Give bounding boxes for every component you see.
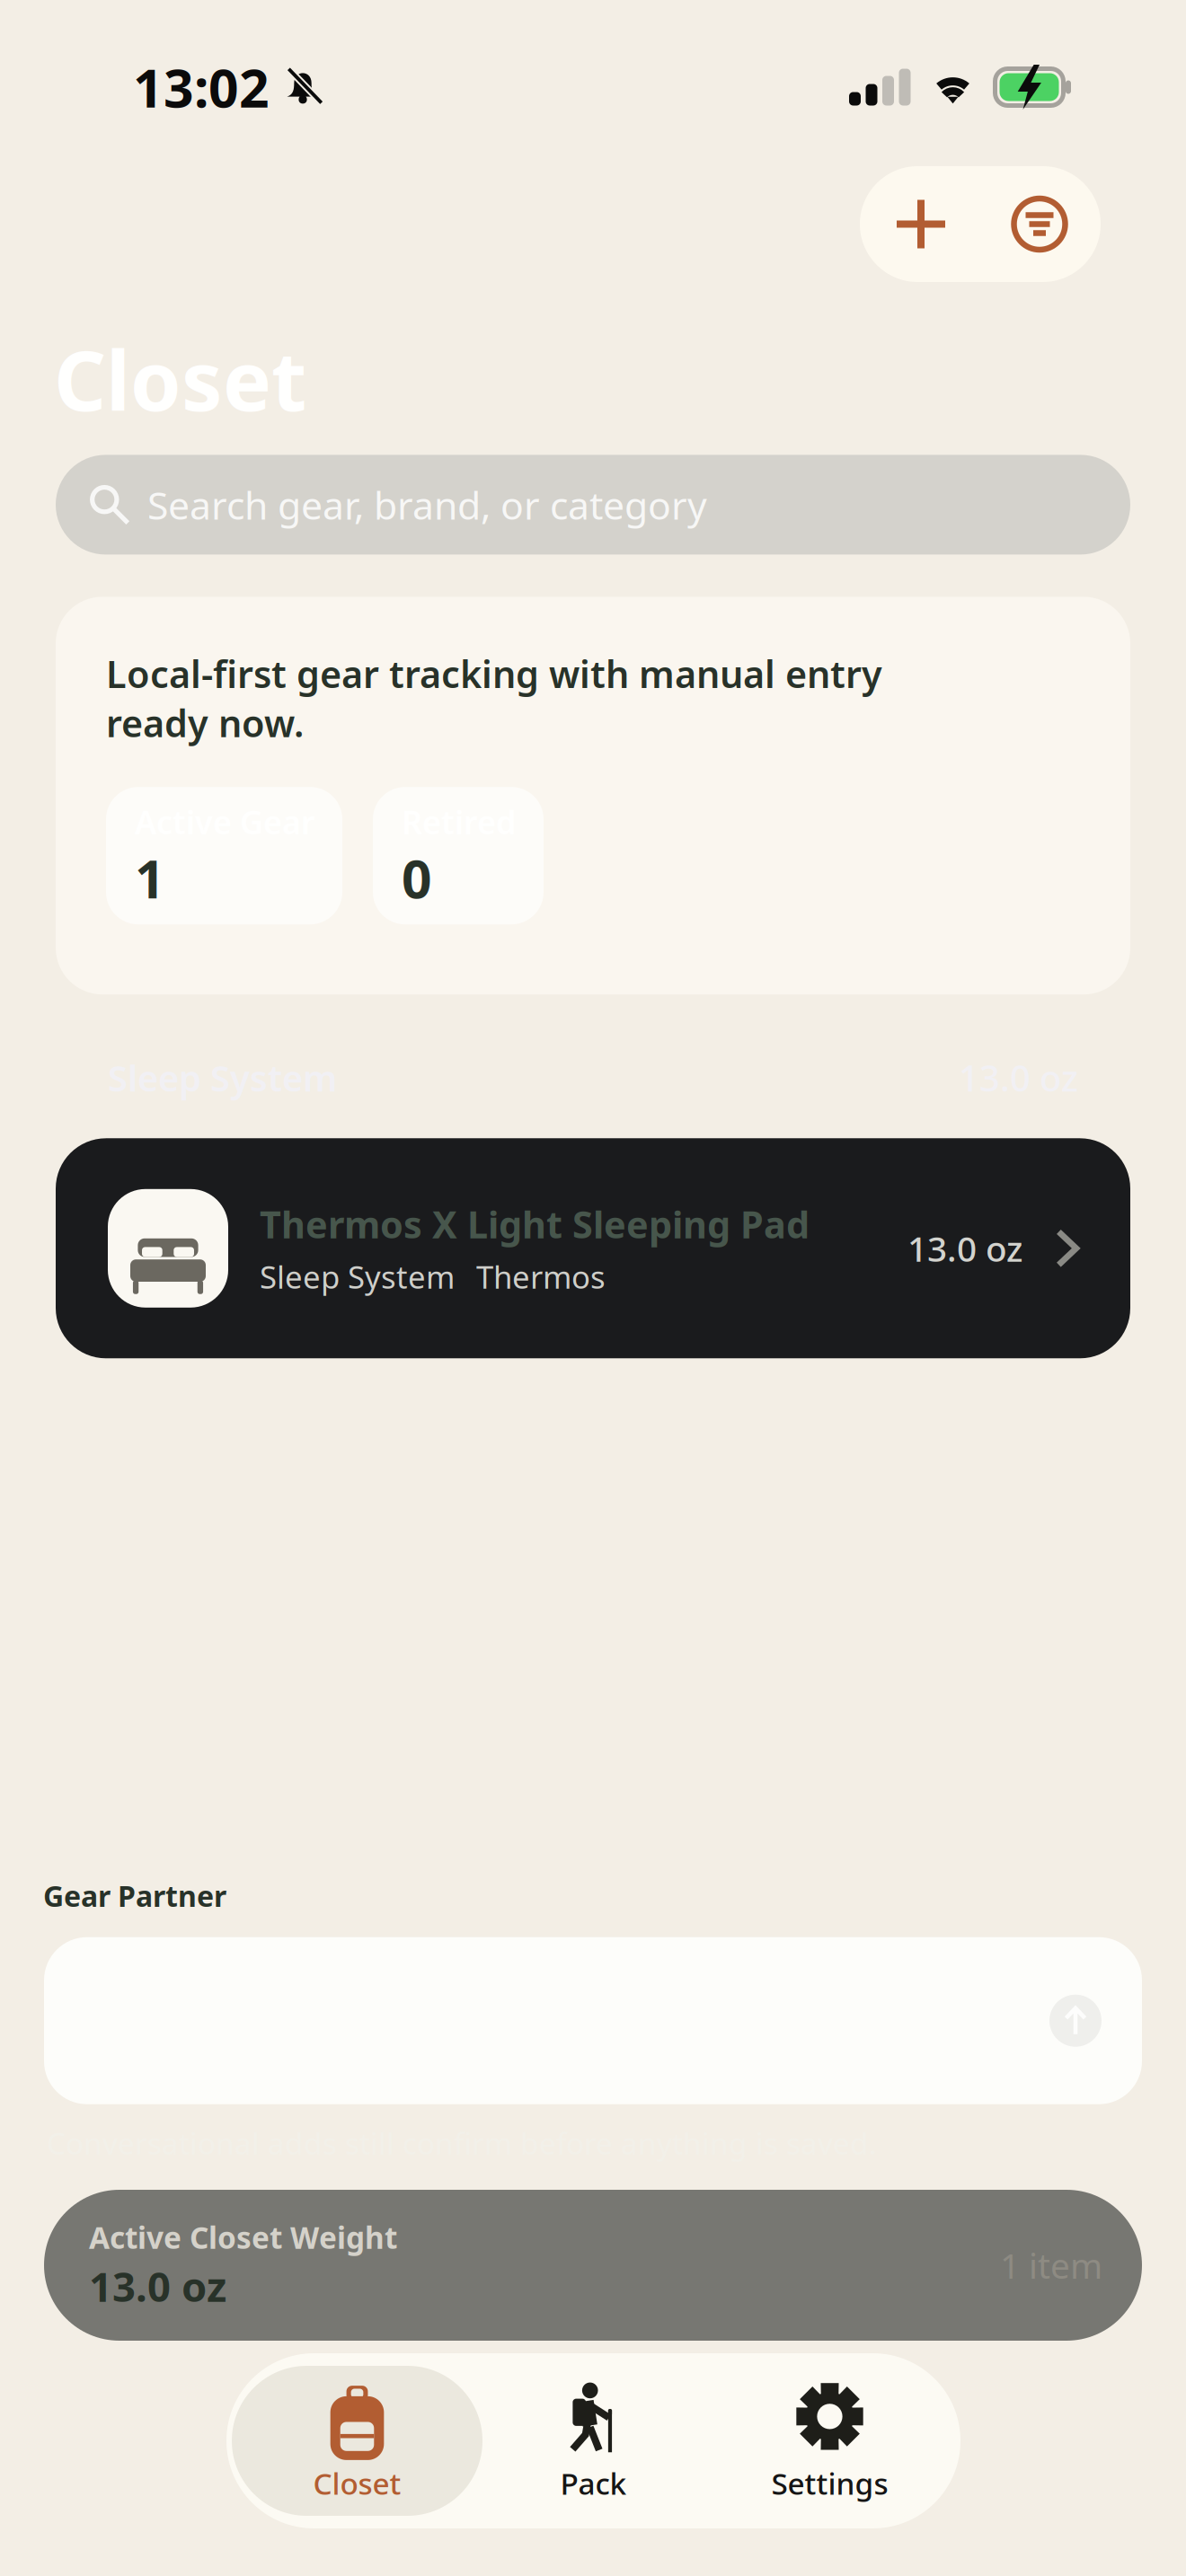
staticText: Local-first gear tracking with manual en…: [106, 649, 882, 747]
staticText: Search gear, brand, or category: [147, 479, 707, 530]
staticText: 1 item: [1000, 2242, 1102, 2288]
staticText: Thermos X Light Sleeping Pad: [260, 1199, 810, 1249]
staticText: 13.0 oz: [959, 1054, 1078, 1101]
button[interactable]: Add gear: [876, 166, 966, 282]
staticText: 13.0 oz: [907, 1225, 1022, 1271]
staticText: 0: [402, 843, 432, 913]
staticText: Gear Partner: [43, 1876, 226, 1915]
staticText: Sleep System: [108, 1054, 337, 1101]
staticText: 13:02: [133, 52, 270, 122]
staticText: Closet: [313, 2463, 401, 2503]
button[interactable]: Closet: [239, 2366, 475, 2516]
staticText: Closet: [54, 325, 306, 433]
staticText: 13.0 oz: [89, 2259, 226, 2313]
button[interactable]: Search gear, brand, or category: [0, 455, 1186, 555]
button[interactable]: Pack: [475, 2366, 712, 2516]
staticText: 1: [135, 843, 165, 913]
button[interactable]: Send message: [1049, 1995, 1102, 2047]
staticText: Active Closet Weight: [89, 2217, 397, 2257]
staticText: Sleep System: [260, 1256, 455, 1297]
button[interactable]: Thermos X Light Sleeping Pad: [0, 1138, 1186, 1358]
staticText: Pack: [560, 2463, 627, 2503]
staticText: Settings: [771, 2463, 888, 2503]
button[interactable]: Settings: [712, 2366, 948, 2516]
button[interactable]: Sort and filter: [995, 166, 1084, 282]
staticText: Thermos: [476, 1256, 606, 1297]
